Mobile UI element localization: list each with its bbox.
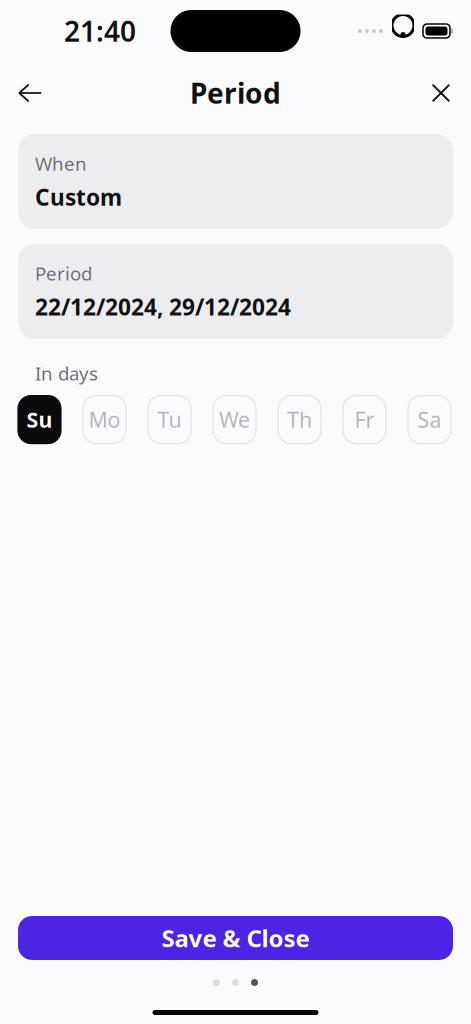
button[interactable]: When [18,134,453,229]
staticText: We [219,405,250,434]
button[interactable]: Su [18,396,61,444]
button[interactable]: Fr [343,396,386,444]
staticText: When [35,151,87,176]
button[interactable]: Back [8,71,52,115]
staticText: Custom [35,182,122,212]
staticText: Period [35,261,92,286]
staticText: Period [190,74,281,112]
staticText: 22/12/2024, 29/12/2024 [35,292,291,322]
button[interactable]: Tu [148,396,191,444]
staticText: Su [26,405,52,434]
button[interactable]: Save & Close [18,916,453,960]
staticText: 21:40 [64,12,136,50]
button[interactable]: Mo [83,396,126,444]
staticText: Mo [88,405,120,434]
button[interactable]: Sa [408,396,451,444]
button[interactable]: Period [18,244,453,339]
staticText: Fr [354,405,374,434]
staticText: Sa [417,405,441,434]
staticText: Save & Close [161,922,309,954]
staticText: Tu [157,405,181,434]
staticText: Th [287,405,312,434]
button[interactable]: Th [278,396,321,444]
button[interactable]: We [213,396,256,444]
button[interactable]: Close [419,71,463,115]
staticText: In days [35,361,98,386]
